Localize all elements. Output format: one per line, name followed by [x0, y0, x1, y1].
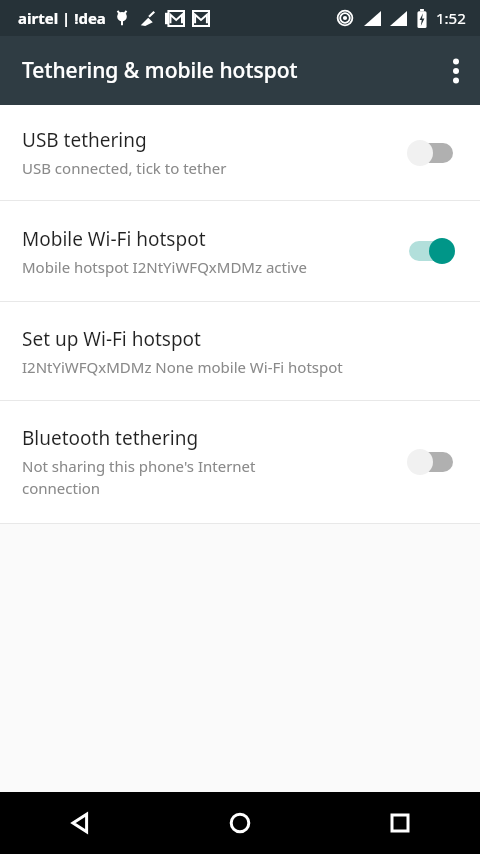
button[interactable]: Home [160, 792, 320, 854]
staticText: Mobile hotspot I2NtYiWFQxMDMz active [22, 257, 307, 277]
staticText: Set up Wi-Fi hotspot [22, 326, 201, 352]
staticText: airtel | !dea [18, 8, 106, 28]
staticText: USB tethering [22, 127, 147, 153]
button[interactable]: Toggle on [400, 229, 462, 273]
button[interactable]: Recent apps [320, 792, 480, 854]
button[interactable]: Mobile Wi-Fi hotspot [0, 201, 480, 301]
button[interactable]: Toggle off [400, 440, 462, 484]
staticText: I2NtYiWFQxMDMz None mobile Wi-Fi hotspot [22, 357, 343, 377]
staticText: Tethering & mobile hotspot [22, 56, 298, 85]
staticText: USB connected, tick to tether [22, 158, 227, 178]
button[interactable]: Bluetooth tethering [0, 401, 480, 523]
staticText: Not sharing this phone's Internet connec… [22, 456, 312, 499]
staticText: Mobile Wi-Fi hotspot [22, 226, 206, 252]
button[interactable]: More options [432, 47, 480, 95]
staticText: Bluetooth tethering [22, 425, 199, 451]
button[interactable]: USB tethering [0, 105, 480, 200]
button[interactable]: Toggle off [400, 131, 462, 175]
button[interactable]: Set up Wi-Fi hotspot [0, 302, 480, 400]
staticText: 1:52 [436, 8, 466, 28]
button[interactable]: Back [0, 792, 160, 854]
